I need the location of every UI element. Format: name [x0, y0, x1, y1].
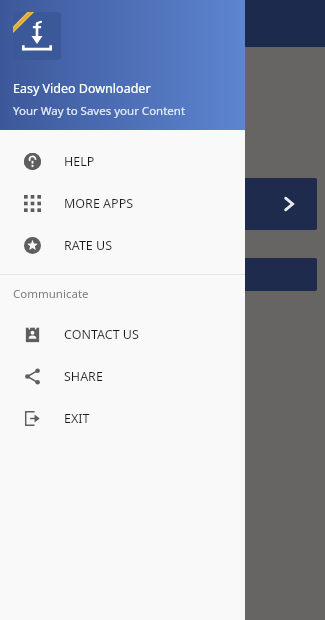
button[interactable]: CONTACT US	[0, 313, 245, 355]
staticText: Your Way to Saves your Content	[13, 103, 186, 119]
staticText: RATE US	[64, 237, 113, 254]
staticText: Communicate	[13, 286, 89, 302]
button[interactable]: EXIT	[0, 397, 245, 439]
staticText: EXIT	[64, 410, 90, 427]
staticText: CONTACT US	[64, 326, 139, 343]
button[interactable]: MORE APPS	[0, 182, 245, 224]
button[interactable]: Open	[8, 178, 317, 230]
other: Open	[279, 194, 299, 214]
button[interactable]: HELP	[0, 140, 245, 182]
button[interactable]	[8, 258, 317, 291]
staticText: HELP	[64, 153, 95, 170]
staticText: SHARE	[64, 368, 103, 385]
staticText: Easy Video Downloader	[13, 80, 151, 97]
button[interactable]: SHARE	[0, 355, 245, 397]
button[interactable]: RATE US	[0, 224, 245, 266]
staticText: MORE APPS	[64, 195, 134, 212]
